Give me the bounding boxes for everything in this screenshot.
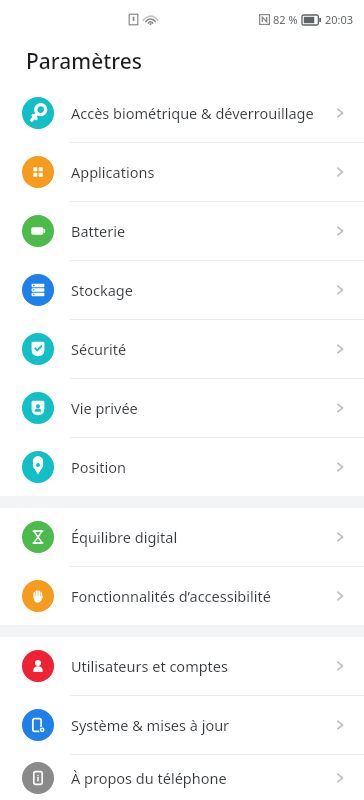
staticText: Applications [71,162,332,182]
other: Ouvrir [332,105,348,121]
other: Ouvrir [332,164,348,180]
staticText: Paramètres [26,47,143,76]
button[interactable]: Sécurité [0,320,364,378]
other: Ouvrir [332,658,348,674]
other: Ouvrir [332,770,348,786]
staticText: Sécurité [71,339,332,359]
button[interactable]: Stockage [0,261,364,319]
button[interactable]: Applications [0,143,364,201]
button[interactable]: Accès biométrique & déverrouillage [0,84,364,142]
other: Ouvrir [332,341,348,357]
staticText: À propos du téléphone [71,768,332,788]
button[interactable]: Batterie [0,202,364,260]
staticText: Accès biométrique & déverrouillage [71,103,332,123]
button[interactable]: Position [0,438,364,496]
other: Ouvrir [332,282,348,298]
staticText: Batterie [71,221,332,241]
other: Ouvrir [332,588,348,604]
other: Ouvrir [332,717,348,733]
other: Ouvrir [332,529,348,545]
other: Ouvrir [332,400,348,416]
staticText: Utilisateurs et comptes [71,656,332,676]
button[interactable]: Vie privée [0,379,364,437]
button[interactable]: À propos du téléphone [0,755,364,800]
other: Ouvrir [332,223,348,239]
button[interactable]: Fonctionnalités d’accessibilité [0,567,364,625]
staticText: 82 % [273,12,298,27]
staticText: Système & mises à jour [71,715,332,735]
staticText: Fonctionnalités d’accessibilité [71,586,332,606]
staticText: Stockage [71,280,332,300]
button[interactable]: Équilibre digital [0,508,364,566]
staticText: 20:03 [325,12,354,27]
staticText: Vie privée [71,398,332,418]
button[interactable]: Utilisateurs et comptes [0,637,364,695]
other: Ouvrir [332,459,348,475]
staticText: Équilibre digital [71,527,332,547]
button[interactable]: Système & mises à jour [0,696,364,754]
staticText: Position [71,457,332,477]
